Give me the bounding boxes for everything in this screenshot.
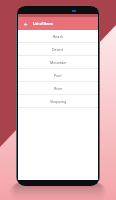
button[interactable]: Desert — [18, 43, 98, 56]
button[interactable]: Beach — [18, 30, 98, 43]
button[interactable]: Back — [21, 20, 29, 28]
staticText: Mountain — [50, 60, 67, 65]
button[interactable]: Pool — [18, 69, 98, 82]
staticText: Desert — [52, 47, 64, 52]
staticText: River — [54, 86, 63, 91]
button[interactable]: Mountain — [18, 56, 98, 69]
staticText: Pool — [54, 73, 62, 78]
staticText: Shopping — [50, 99, 67, 104]
button[interactable]: Shopping — [18, 95, 98, 108]
staticText: List of Items — [33, 22, 53, 26]
staticText: Beach — [53, 34, 64, 39]
button[interactable]: River — [18, 82, 98, 95]
button[interactable]: Back — [18, 17, 98, 30]
